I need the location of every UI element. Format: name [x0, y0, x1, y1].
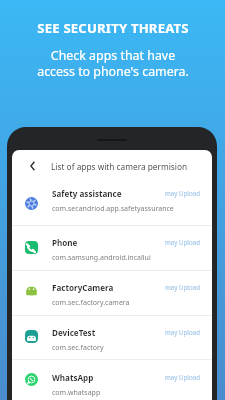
button[interactable]: [12, 271, 212, 315]
button[interactable]: Back: [20, 150, 44, 181]
staticText: com.sec.factory: [52, 343, 104, 353]
staticText: may Upload: [165, 328, 200, 336]
staticText: may Upload: [165, 238, 200, 246]
staticText: com.secandriod.app.safetyassurance: [52, 204, 174, 214]
staticText: WhatsApp: [52, 372, 94, 383]
staticText: com.samsung.android.incallui: [52, 253, 151, 263]
staticText: List of apps with camera permision: [51, 161, 188, 172]
staticText: Safety assistance: [52, 188, 122, 199]
staticText: may Upload: [165, 373, 200, 381]
staticText: DeviceTest: [52, 327, 96, 338]
staticText: SEE SECURITY THREATS: [37, 19, 189, 37]
staticText: FactoryCamera: [52, 282, 114, 293]
staticText: com.whatsapp: [52, 388, 101, 398]
staticText: Check apps that have access to phone's c…: [37, 47, 189, 80]
button[interactable]: List of apps with camera permision: [40, 150, 210, 181]
staticText: Phone: [52, 237, 78, 248]
button[interactable]: [12, 316, 212, 359]
button[interactable]: [12, 181, 212, 225]
button[interactable]: [12, 360, 212, 400]
staticText: may Upload: [165, 283, 200, 291]
staticText: may Upload: [165, 189, 200, 197]
button[interactable]: [12, 226, 212, 270]
staticText: com.sec.factory.camera: [52, 298, 130, 308]
